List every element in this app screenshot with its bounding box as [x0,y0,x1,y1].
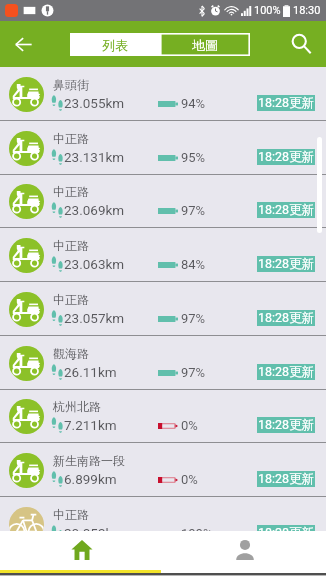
staticText: 18:30 [293,4,321,17]
staticText: 23.057km [64,310,125,326]
staticText: 觀海路 [53,346,89,361]
staticText: 鼻頭街 [53,77,89,92]
staticText: 23.131km [64,149,125,165]
staticText: 23.069km [64,202,125,218]
staticText: 100% [254,4,281,17]
staticText: 18:28更新 [258,149,315,165]
staticText: 中正路 [53,131,89,146]
button[interactable]: Back [0,21,46,67]
staticText: 18:28更新 [258,471,315,487]
staticText: 95% [181,150,206,165]
staticText: 97% [181,311,206,326]
staticText: 84% [181,257,206,272]
staticText: 23.063km [64,256,125,272]
button[interactable]: Search [278,21,324,67]
staticText: 列表 [102,37,128,53]
staticText: 97% [181,365,206,380]
button[interactable]: Home [0,531,163,572]
button[interactable]: 列表 [70,33,160,56]
staticText: 7.211km [64,417,117,433]
staticText: 94% [181,96,206,111]
staticText: 20.853km [64,525,125,531]
staticText: 26.11km [64,364,117,380]
staticText: 18:28更新 [258,310,315,326]
staticText: 18:28更新 [258,364,315,380]
staticText: 6.899km [64,471,117,487]
staticText: 0% [181,418,198,433]
staticText: 23.055km [64,95,125,111]
staticText: 中正路 [53,184,89,199]
staticText: 0% [181,472,198,487]
staticText: 杭州北路 [53,399,101,414]
staticText: 中正路 [53,507,89,522]
staticText: 18:28更新 [258,525,315,531]
button[interactable]: Profile [163,531,326,572]
staticText: 18:28更新 [258,202,315,218]
staticText: 新生南路一段 [53,453,125,468]
staticText: 18:28更新 [258,95,315,111]
staticText: 中正路 [53,238,89,253]
staticText: 18:28更新 [258,256,315,272]
staticText: 18:28更新 [258,417,315,433]
button[interactable]: 地圖 [160,33,250,56]
staticText: 中正路 [53,292,89,307]
staticText: 地圖 [192,37,218,53]
staticText: 100% [181,526,213,531]
staticText: 97% [181,203,206,218]
